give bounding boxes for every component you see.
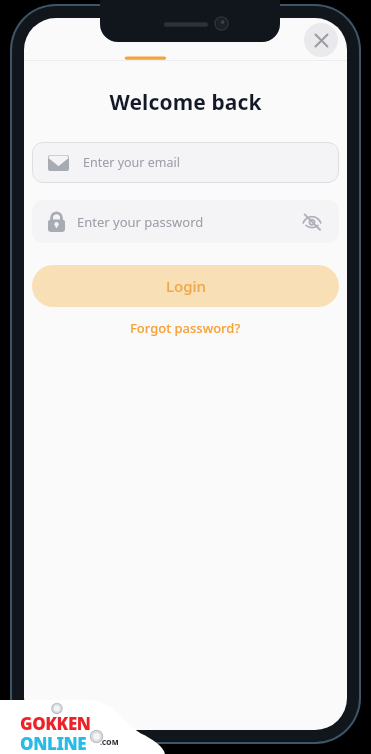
staticText: GOKKEN xyxy=(20,712,91,735)
staticText: Enter your password xyxy=(77,213,299,231)
button[interactable]: Enter your email xyxy=(32,142,339,183)
button[interactable]: Forgot password? xyxy=(122,316,249,340)
button[interactable]: Close xyxy=(304,23,338,57)
button[interactable]: Enter your password xyxy=(32,200,339,243)
button[interactable]: Show password xyxy=(299,209,325,235)
staticText: ONLINE xyxy=(20,732,87,754)
staticText: Welcome back xyxy=(109,88,262,117)
staticText: Forgot password? xyxy=(130,319,241,337)
staticText: Enter your email xyxy=(83,154,180,171)
button[interactable]: Login xyxy=(32,265,339,307)
staticText: Login xyxy=(166,276,206,296)
staticText: .COM xyxy=(100,738,119,748)
